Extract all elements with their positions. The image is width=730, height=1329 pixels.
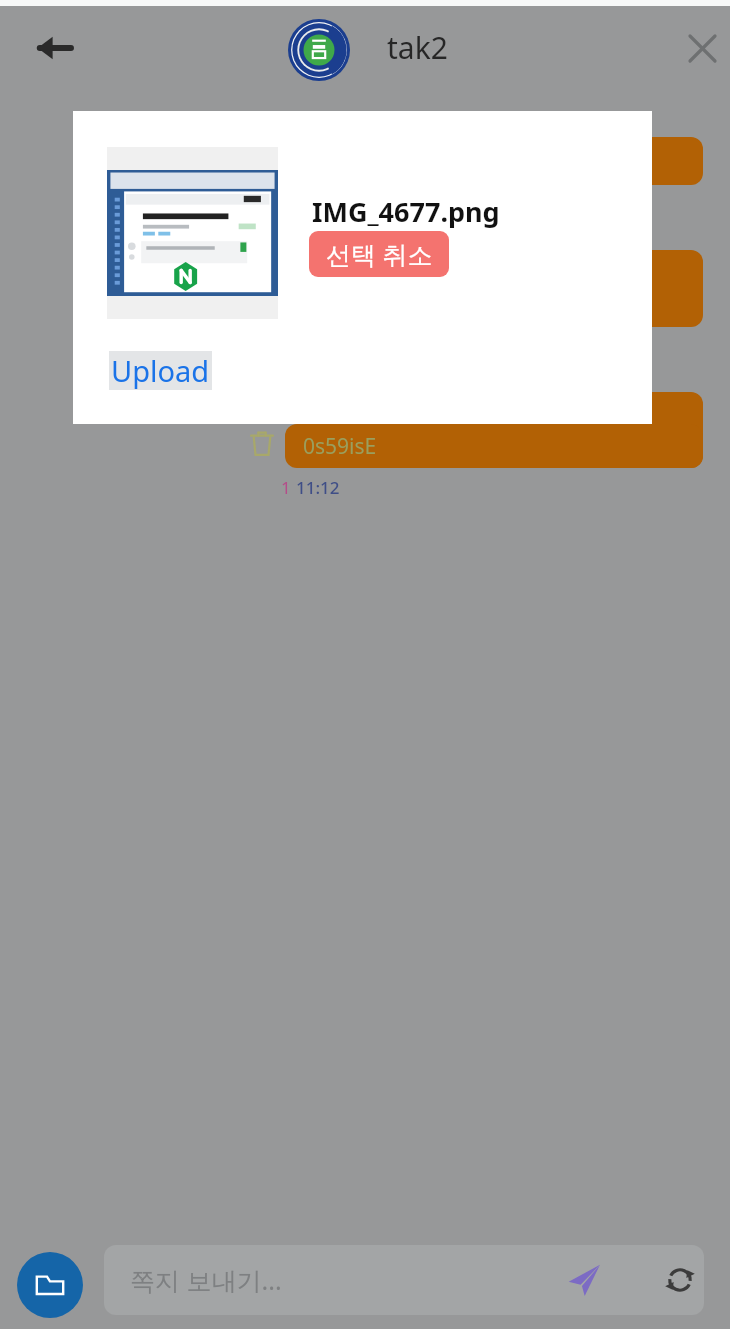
button[interactable]: 0s59isE: [285, 424, 703, 468]
staticText: 011: [362, 258, 399, 287]
button[interactable]: Close: [674, 20, 730, 76]
staticText: 쪽지 보내기...: [130, 1263, 282, 1297]
button[interactable]: Upload: [109, 351, 212, 390]
button[interactable]: 선택 취소: [309, 231, 449, 277]
button[interactable]: Back: [24, 18, 84, 78]
staticText: tak2: [387, 27, 448, 68]
button[interactable]: 011: [352, 250, 703, 327]
staticText: 0s59isE: [303, 432, 377, 461]
staticText: IMG_4677.png: [312, 193, 500, 230]
button[interactable]: Attach file: [17, 1252, 83, 1318]
button[interactable]: Refresh: [654, 1254, 704, 1306]
staticText: 선택 취소: [326, 237, 433, 271]
staticText: Upload: [111, 351, 210, 390]
button[interactable]: kS_l: [352, 392, 703, 468]
staticText: 11:12: [296, 476, 340, 499]
button[interactable]: Send: [556, 1252, 612, 1308]
button[interactable]: 쪽지 보내기...: [104, 1245, 704, 1315]
staticText: kS_l: [362, 400, 400, 429]
button[interactable]: Delete message: [246, 428, 278, 460]
button[interactable]: test: [352, 137, 703, 185]
staticText: 1: [281, 476, 291, 499]
